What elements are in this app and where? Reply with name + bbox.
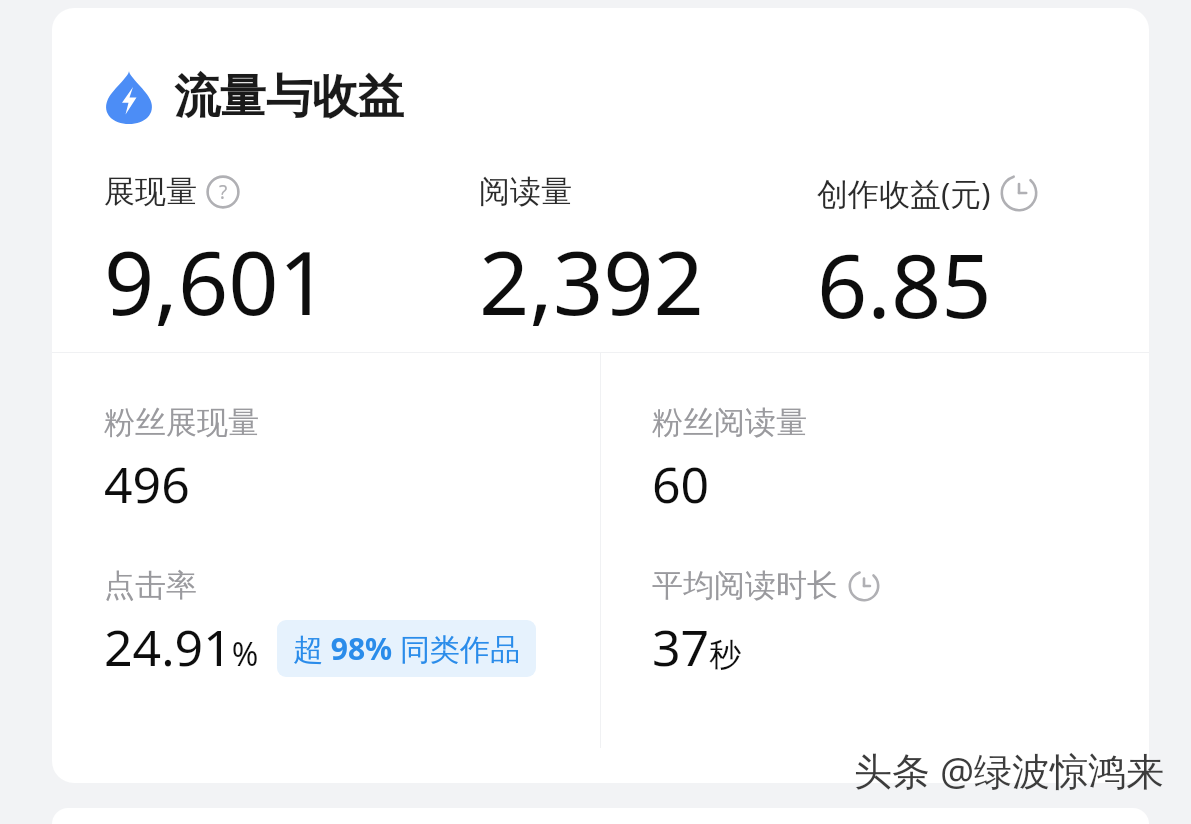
button[interactable]: 流量与收益 bbox=[52, 8, 1149, 783]
staticText: 6.85 bbox=[817, 224, 992, 344]
staticText: 496 bbox=[104, 450, 190, 518]
button[interactable]: 点击率 bbox=[104, 566, 536, 681]
button[interactable]: 粉丝阅读量 bbox=[652, 403, 807, 518]
staticText: 24.91% bbox=[104, 613, 259, 681]
staticText: 阅读量 bbox=[479, 172, 572, 211]
button[interactable]: 超 98% 同类作品 bbox=[277, 620, 536, 677]
staticText: 超 98% 同类作品 bbox=[293, 628, 520, 669]
staticText: 2,392 bbox=[479, 221, 704, 341]
staticText: 60 bbox=[652, 450, 710, 518]
staticText: 37秒 bbox=[652, 613, 742, 681]
staticText: ? bbox=[219, 179, 228, 205]
staticText: 头条 @绿波惊鸿来 bbox=[854, 744, 1165, 796]
button[interactable]: 粉丝展现量 bbox=[104, 403, 259, 518]
staticText: 9,601 bbox=[104, 221, 329, 341]
staticText: 点击率 bbox=[104, 566, 197, 605]
other: 时长说明 bbox=[848, 570, 880, 602]
staticText: 创作收益(元) bbox=[817, 172, 991, 214]
other: 说明 bbox=[206, 175, 240, 209]
staticText: 粉丝阅读量 bbox=[652, 403, 807, 442]
staticText: 流量与收益 bbox=[174, 68, 404, 126]
other: 历史收益 bbox=[1000, 174, 1038, 212]
staticText: 展现量 bbox=[104, 172, 197, 211]
button[interactable]: 流量与收益 bbox=[104, 68, 404, 126]
staticText: 粉丝展现量 bbox=[104, 403, 259, 442]
staticText: 平均阅读时长 bbox=[652, 566, 838, 605]
button[interactable]: 平均阅读时长 bbox=[652, 566, 880, 681]
